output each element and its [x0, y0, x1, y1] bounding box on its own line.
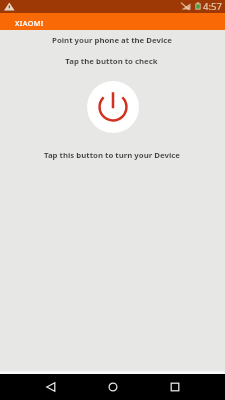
- button[interactable]: Recents: [160, 374, 190, 400]
- button[interactable]: Power: [87, 81, 139, 133]
- staticText: Point your phone at the Device: [52, 35, 172, 46]
- staticText: XIAOMI: [15, 18, 44, 28]
- button[interactable]: Back: [36, 374, 66, 400]
- staticText: 4:57: [203, 0, 222, 13]
- staticText: Tap this button to turn your Device: [44, 150, 180, 161]
- button[interactable]: Home: [98, 374, 128, 400]
- staticText: Tap the button to check: [65, 56, 158, 67]
